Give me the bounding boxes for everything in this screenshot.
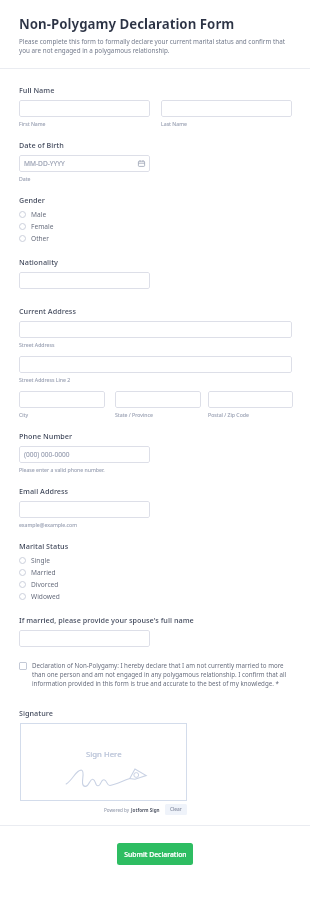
staticText: Other [31,234,50,243]
staticText: Last Name [161,120,187,127]
staticText: Gender [19,195,45,205]
staticText: Street Address [19,341,55,348]
staticText: Nationality [19,257,59,267]
button[interactable] [208,391,293,408]
staticText: Clear [170,806,182,813]
staticText: Submit Declaration [124,850,187,859]
button[interactable]: Widowed [0,590,310,602]
button[interactable] [161,100,292,117]
staticText: Divorced [31,580,59,589]
button[interactable]: Divorced [0,578,310,590]
staticText: Email Address [19,486,69,496]
staticText: First Name [19,120,46,127]
button[interactable]: Declaration of Non-Polygamy: I hereby de… [19,661,294,688]
staticText: Powered by [104,807,131,813]
button[interactable] [19,391,105,408]
button[interactable]: (000) 000-0000 [19,446,150,463]
button[interactable]: Other [0,232,310,244]
staticText: Widowed [31,592,60,601]
staticText: Male [31,210,47,219]
staticText: State / Province [115,411,153,418]
staticText: Female [31,222,54,231]
staticText: Date of Birth [19,140,64,150]
staticText: If married, please provide your spouse's… [19,615,194,625]
staticText: example@example.com [19,521,78,528]
staticText: Sign Here [86,749,122,760]
staticText: Street Address Line 2 [19,376,71,383]
button[interactable]: MM-DD-YYYY [19,155,150,172]
staticText: MM-DD-YYYY [24,159,65,168]
button[interactable]: Female [0,220,310,232]
button[interactable]: Sign here [20,723,187,801]
staticText: Please enter a valid phone number. [19,466,105,473]
button[interactable] [19,321,292,338]
button[interactable] [19,356,292,373]
staticText: Please complete this form to formally de… [19,37,296,55]
button[interactable] [19,272,150,289]
staticText: Full Name [19,85,55,95]
staticText: Postal / Zip Code [208,411,249,418]
staticText: Marital Status [19,541,69,551]
staticText: Signature [19,708,53,718]
staticText: Single [31,556,50,565]
staticText: (000) 000-0000 [24,450,70,459]
button[interactable]: Male [0,208,310,220]
button[interactable] [19,501,150,518]
staticText: Declaration of Non-Polygamy: I hereby de… [32,661,294,688]
button[interactable] [19,100,150,117]
staticText: Current Address [19,306,76,316]
button[interactable] [19,630,150,647]
button[interactable]: Single [0,554,310,566]
staticText: Phone Number [19,431,73,441]
staticText: Married [31,568,56,577]
button[interactable]: Married [0,566,310,578]
staticText: Jotform Sign [131,807,160,813]
button[interactable] [115,391,201,408]
staticText: Date [19,175,31,182]
staticText: Non-Polygamy Declaration Form [19,15,235,33]
staticText: City [19,411,29,418]
button[interactable]: Clear [165,804,187,815]
button[interactable]: Submit Declaration [117,843,193,865]
